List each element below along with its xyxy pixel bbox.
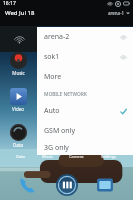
staticText: arena-2 [44,32,70,42]
button[interactable]: More [37,67,133,87]
staticText: Data [16,154,25,159]
staticText: arena-1 [108,10,125,16]
staticText: 16:17 [3,0,16,7]
staticText: Data [13,142,23,148]
button[interactable]: Data [3,124,33,148]
button[interactable]: 3G only [37,141,133,155]
staticText: Video [12,106,24,112]
button[interactable]: arena-2 [37,27,133,47]
button[interactable]: Messaging [94,174,116,196]
button[interactable]: GSM only [37,121,133,141]
staticText: Wed Jul 18 [5,9,35,17]
staticText: MOBILE NETWORK [44,91,87,98]
button[interactable]: Music [3,52,33,76]
button[interactable]: Phone [17,174,39,196]
button[interactable]: sok1 [37,47,133,67]
button[interactable]: Apps [56,174,78,196]
staticText: sok1 [44,52,60,62]
staticText: Settings [101,154,117,159]
staticText: 3G only [44,143,69,153]
button[interactable]: Wi-Fi [11,31,27,47]
button[interactable]: Auto [37,101,133,121]
staticText: GSM only [44,126,76,136]
staticText: More [44,72,62,82]
staticText: Auto [44,106,60,116]
staticText: Camera [69,154,84,159]
staticText: Music [42,154,53,159]
staticText: Music [12,70,25,76]
button[interactable]: Video [3,88,33,112]
